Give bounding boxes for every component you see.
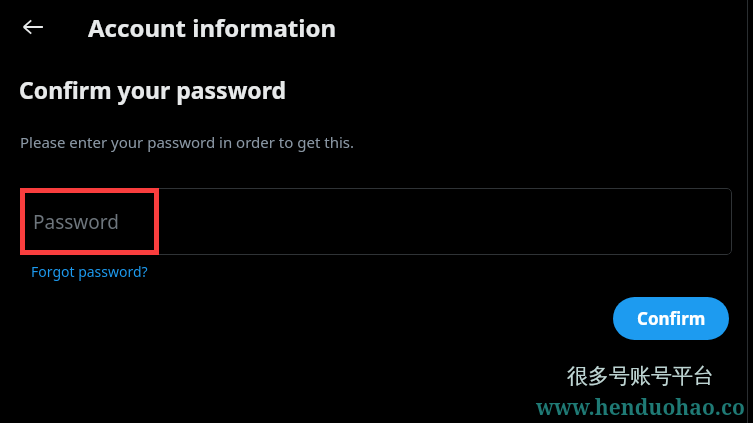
staticText: Password (33, 209, 119, 235)
button[interactable]: Back (14, 8, 52, 46)
staticText: Confirm (637, 307, 706, 330)
staticText: Forgot password? (31, 262, 148, 281)
staticText: Please enter your password in order to g… (20, 132, 354, 152)
staticText: 很多号账号平台 (567, 363, 714, 389)
button[interactable]: Forgot password? (28, 260, 151, 283)
button[interactable]: Confirm (613, 297, 729, 340)
button[interactable]: Password (20, 188, 732, 255)
staticText: www.henduohao.com (533, 393, 748, 423)
staticText: Confirm your password (19, 74, 287, 105)
staticText: Account information (88, 11, 336, 44)
